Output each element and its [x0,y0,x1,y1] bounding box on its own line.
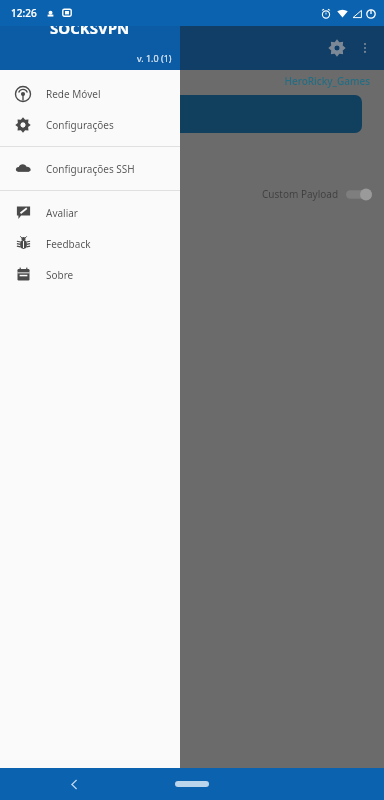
button[interactable]: Configurações [0,109,180,140]
button[interactable]: Settings [320,31,354,65]
staticText: DIRECT [31,162,66,176]
staticText: 12:26 [11,6,37,20]
button[interactable]: Configurações SSH [0,153,180,184]
staticText: Sobre [46,268,74,282]
staticText: Modo de Conexão [18,143,105,157]
staticText: SSH + PROXY [94,162,155,176]
staticText: Custom Payload [262,187,339,201]
staticText: Rede Móvel [46,87,101,101]
staticText: Configurações [46,118,114,132]
button[interactable]: SSH + PROXY [76,162,155,176]
staticText: Feedback [46,237,91,251]
button[interactable]: Rede Móvel [0,78,180,109]
staticText: v. 1.0 (1) [137,52,172,64]
button[interactable]: INICIAR [22,95,362,133]
button[interactable]: DIRECT [14,162,66,176]
staticText: Avaliar [46,206,78,220]
button[interactable]: Avaliar [0,197,180,228]
staticText: Configurações SSH [46,162,135,176]
staticText: INICIAR [38,106,84,122]
button[interactable]: Feedback [0,228,180,259]
staticText: SOCKSVPN [50,18,130,38]
staticText: HeroRicky_Games [0,74,370,88]
button[interactable]: Back [60,770,88,798]
button[interactable]: More options [350,33,380,63]
button[interactable]: Custom Payload [0,187,372,201]
button[interactable]: Sobre [0,259,180,290]
button[interactable]: Home [169,775,215,793]
